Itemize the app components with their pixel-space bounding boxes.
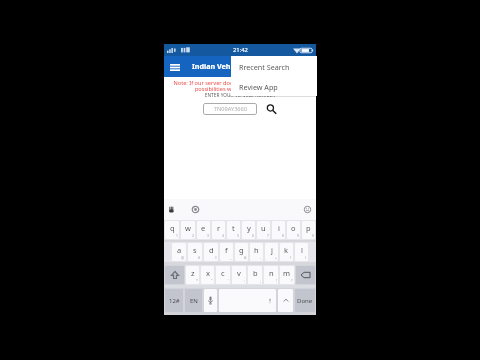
- staticText: e: [201, 223, 206, 233]
- button[interactable]: g: [235, 243, 248, 261]
- staticText: ENTER YOUR VEHICLE NUMBER: [164, 92, 316, 99]
- button[interactable]: a: [172, 243, 186, 261]
- staticText: q: [170, 223, 175, 233]
- button[interactable]: TN09AY3660: [203, 103, 257, 115]
- button[interactable]: d: [204, 243, 218, 261]
- staticText: v: [237, 268, 241, 278]
- staticText: Rrecent Search: [239, 62, 290, 72]
- button[interactable]: Emoji: [302, 204, 313, 215]
- button[interactable]: r: [212, 221, 225, 239]
- staticText: @: [181, 255, 185, 260]
- staticText: n: [269, 268, 274, 278]
- staticText: 2: [192, 233, 194, 238]
- staticText: 7: [267, 233, 269, 238]
- staticText: 12#: [169, 297, 180, 305]
- staticText: Done: [297, 297, 313, 305]
- button[interactable]: l: [295, 243, 308, 261]
- staticText: 8: [282, 233, 284, 238]
- staticText: ): [305, 255, 307, 260]
- staticText: u: [261, 223, 266, 233]
- button[interactable]: v: [232, 266, 246, 284]
- staticText: 1: [176, 233, 178, 238]
- staticText: 4: [222, 233, 224, 238]
- button[interactable]: s: [188, 243, 202, 261]
- staticText: Note: If our server does not respond, it…: [164, 79, 316, 87]
- staticText: 6: [252, 233, 254, 238]
- button[interactable]: Punctuation: [278, 289, 293, 312]
- staticText: ": [211, 278, 213, 283]
- button[interactable]: 12#: [165, 289, 183, 312]
- staticText: s: [193, 245, 197, 255]
- staticText: r: [217, 223, 221, 233]
- staticText: b: [253, 268, 258, 278]
- button[interactable]: h: [250, 243, 263, 261]
- button[interactable]: m: [280, 266, 294, 284]
- button[interactable]: Keyboard settings: [190, 204, 201, 215]
- button[interactable]: Handwriting input: [166, 204, 177, 215]
- button[interactable]: f: [220, 243, 233, 261]
- staticText: y: [247, 223, 251, 233]
- staticText: _: [230, 255, 232, 260]
- button[interactable]: Review App: [231, 77, 317, 96]
- staticText: m: [283, 268, 291, 278]
- button[interactable]: Shift: [165, 266, 184, 284]
- staticText: 3: [207, 233, 209, 238]
- staticText: +: [275, 255, 277, 260]
- button[interactable]: EN: [185, 289, 202, 312]
- button[interactable]: k: [280, 243, 293, 261]
- button[interactable]: Voice input: [204, 289, 217, 312]
- button[interactable]: Rrecent Search: [231, 56, 317, 77]
- staticText: 9: [297, 233, 299, 238]
- button[interactable]: i: [272, 221, 285, 239]
- staticText: Review App: [239, 82, 278, 92]
- staticText: TN09AY3660: [214, 105, 247, 113]
- button[interactable]: j: [265, 243, 278, 261]
- staticText: possibilities who you raise request: [164, 85, 316, 93]
- staticText: 21:42: [233, 46, 248, 54]
- button[interactable]: t: [227, 221, 240, 239]
- button[interactable]: p: [302, 221, 315, 239]
- staticText: *: [196, 278, 198, 283]
- button[interactable]: c: [216, 266, 230, 284]
- button[interactable]: n: [264, 266, 278, 284]
- button[interactable]: b: [248, 266, 262, 284]
- button[interactable]: Backspace: [296, 266, 315, 284]
- staticText: i: [278, 223, 280, 233]
- staticText: a: [177, 245, 182, 255]
- staticText: k: [284, 245, 289, 255]
- staticText: p: [306, 223, 311, 233]
- staticText: :: [244, 278, 245, 283]
- button[interactable]: Space: [219, 289, 276, 312]
- staticText: &: [244, 255, 247, 260]
- staticText: w: [185, 223, 191, 233]
- button[interactable]: e: [197, 221, 210, 239]
- staticText: (: [290, 255, 292, 260]
- staticText: ;: [260, 278, 261, 283]
- button[interactable]: y: [242, 221, 255, 239]
- staticText: j: [271, 245, 273, 255]
- staticText: ?: [291, 278, 293, 283]
- button[interactable]: u: [257, 221, 270, 239]
- staticText: d: [209, 245, 214, 255]
- staticText: ': [228, 278, 229, 283]
- button[interactable]: Done: [295, 289, 315, 312]
- staticText: f: [225, 245, 228, 255]
- staticText: 0: [312, 233, 314, 238]
- button[interactable]: o: [287, 221, 300, 239]
- button[interactable]: Open navigation menu: [167, 59, 183, 75]
- staticText: EN: [190, 297, 198, 305]
- button[interactable]: Search: [264, 102, 278, 116]
- staticText: o: [291, 223, 296, 233]
- staticText: #: [198, 255, 201, 260]
- staticText: z: [191, 268, 195, 278]
- button[interactable]: w: [181, 221, 195, 239]
- staticText: Indian Vehicle Info: [192, 61, 260, 71]
- button[interactable]: x: [201, 266, 214, 284]
- staticText: l: [301, 245, 303, 255]
- button[interactable]: z: [186, 266, 199, 284]
- staticText: 5: [237, 233, 239, 238]
- staticText: -: [260, 255, 262, 260]
- staticText: x: [206, 268, 210, 278]
- staticText: t: [232, 223, 235, 233]
- button[interactable]: q: [165, 221, 179, 239]
